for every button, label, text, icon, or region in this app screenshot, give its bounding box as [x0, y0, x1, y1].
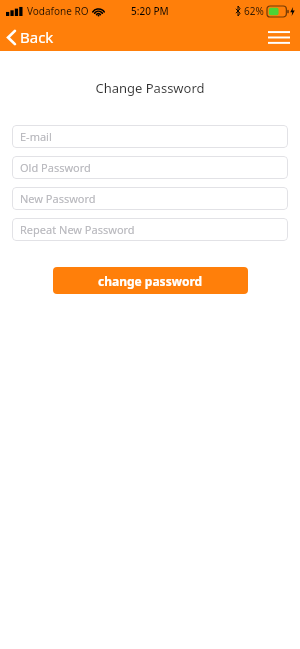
button[interactable]: change password — [53, 267, 248, 294]
staticText: Change Password — [0, 79, 300, 97]
staticText: Repeat New Password — [20, 222, 135, 237]
staticText: 62% — [244, 4, 264, 18]
staticText: Back — [20, 27, 54, 47]
button[interactable]: E-mail — [12, 125, 288, 148]
button[interactable]: Menu — [258, 24, 300, 49]
staticText: Vodafone RO — [27, 4, 89, 18]
staticText: 5:20 PM — [131, 4, 169, 18]
staticText: change password — [98, 273, 203, 289]
button[interactable]: Old Password — [12, 156, 288, 179]
button[interactable]: Back — [0, 24, 64, 50]
button[interactable]: New Password — [12, 187, 288, 210]
staticText: New Password — [20, 191, 96, 206]
staticText: E-mail — [20, 129, 52, 144]
button[interactable]: Repeat New Password — [12, 218, 288, 241]
staticText: Old Password — [20, 160, 91, 175]
